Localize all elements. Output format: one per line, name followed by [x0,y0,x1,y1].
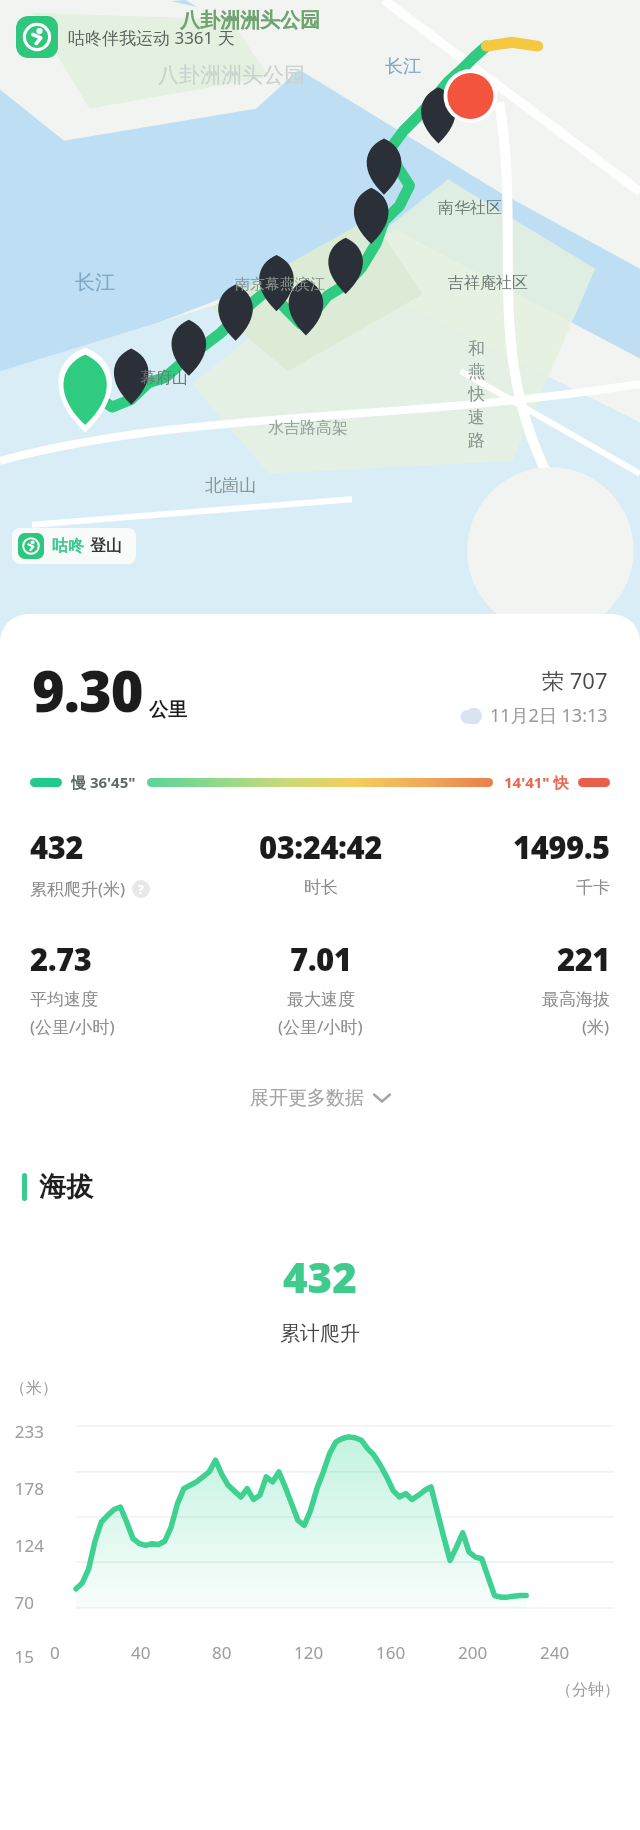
staticText: 11月2日 13:13 [490,703,608,728]
staticText: (公里/小时) [30,1015,115,1038]
staticText: 咕咚 [52,536,84,556]
staticText: 展开更多数据 [250,1086,364,1110]
staticText: (公里/小时) [278,1015,363,1038]
staticText: 最高海拔 [542,989,610,1010]
staticText: 1499.5 [513,826,610,868]
staticText: 累计爬升 [280,1321,360,1346]
staticText: 吉祥庵社区 [448,273,528,293]
staticText: 120 [294,1641,324,1664]
staticText: 233 [14,1420,44,1443]
staticText: （米） [10,1378,58,1398]
staticText: 咕咚伴我运动 3361 天 [68,26,235,49]
button[interactable]: 帮助 [132,880,150,898]
staticText: 0 [50,1641,60,1664]
staticText: 海拔 [39,1170,93,1204]
staticText: 178 [14,1477,44,1500]
staticText: 北崮山 [205,475,256,496]
staticText: 9.30 [32,652,143,728]
staticText: 八卦洲洲头公园 [158,62,305,88]
staticText: 幕府山 [140,368,188,388]
staticText: ? [138,881,144,897]
staticText: 80 [212,1641,232,1664]
staticText: 7.01 [290,938,352,980]
staticText: 432 [30,826,83,868]
staticText: 登山 [90,536,122,556]
staticText: 水吉路高架 [268,418,348,438]
button[interactable]: 咕咚伴我运动 3361 天 [16,16,235,58]
staticText: 南京幕燕滨江 [235,275,325,294]
staticText: 千卡 [576,877,610,898]
staticText: 240 [540,1641,570,1664]
staticText: 03:24:42 [259,826,382,868]
staticText: 和燕快速路 [468,338,488,451]
staticText: 221 [557,938,610,980]
staticText: 长江 [385,55,421,78]
staticText: 公里 [149,698,187,722]
staticText: 最大速度 [287,989,355,1010]
staticText: 南华社区 [438,198,502,218]
staticText: 14'41" 快 [504,772,569,792]
button[interactable]: 展开更多数据 [0,1078,640,1118]
staticText: 15 [14,1645,34,1668]
staticText: 200 [458,1641,488,1664]
button[interactable]: 咕咚 [18,533,122,559]
staticText: 慢 36'45" [71,772,136,792]
staticText: 432 [283,1248,357,1305]
staticText: 124 [14,1534,44,1557]
staticText: 累积爬升(米) [30,877,126,900]
staticText: 时长 [304,877,338,898]
staticText: 八卦洲洲头公园 [180,8,320,33]
staticText: 2.73 [30,938,92,980]
staticText: 40 [131,1641,151,1664]
staticText: 平均速度 [30,989,98,1010]
staticText: 荣 707 [542,665,608,695]
staticText: (米) [582,1015,610,1038]
staticText: 160 [376,1641,406,1664]
staticText: 70 [14,1591,34,1614]
staticText: （分钟） [556,1680,620,1700]
staticText: 长江 [75,270,115,295]
